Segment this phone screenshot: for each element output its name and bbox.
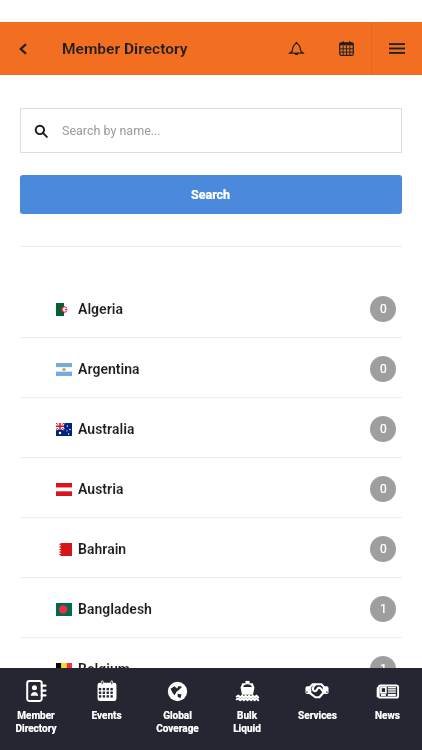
button[interactable]: Calendar <box>321 22 372 75</box>
button[interactable]: Events <box>71 668 142 750</box>
button[interactable]: Austria <box>0 461 422 517</box>
button[interactable]: News <box>352 668 422 750</box>
button[interactable]: Bahrain <box>0 521 422 577</box>
staticText: Services <box>298 710 337 722</box>
staticText: Bahrain <box>78 541 127 557</box>
staticText: Search by name... <box>62 123 161 138</box>
button[interactable]: Notifications <box>271 22 321 75</box>
staticText: Global Coverage <box>156 710 199 734</box>
staticText: Member Directory <box>62 40 188 58</box>
staticText: 1 <box>380 662 387 676</box>
button[interactable]: Search <box>20 175 402 214</box>
button[interactable]: Argentina <box>0 341 422 397</box>
staticText: Argentina <box>78 361 140 377</box>
button[interactable]: Search by name... <box>20 108 402 153</box>
button[interactable]: Global Coverage <box>142 668 212 750</box>
staticText: News <box>375 710 400 722</box>
button[interactable]: Services <box>282 668 352 750</box>
staticText: 0 <box>380 302 387 316</box>
staticText: 0 <box>380 482 387 496</box>
button[interactable]: Belgium <box>0 641 422 697</box>
staticText: Australia <box>78 421 135 437</box>
button[interactable]: Algeria <box>0 281 422 337</box>
staticText: Search <box>191 187 231 202</box>
staticText: 1 <box>380 602 387 616</box>
staticText: Bulk Liquid <box>233 710 261 734</box>
button[interactable]: Member Directory <box>0 668 71 750</box>
button[interactable]: Australia <box>0 401 422 457</box>
staticText: Algeria <box>78 301 123 317</box>
staticText: 0 <box>380 362 387 376</box>
staticText: Belgium <box>78 661 130 677</box>
button[interactable]: Bulk Liquid <box>212 668 282 750</box>
staticText: 0 <box>380 542 387 556</box>
button[interactable]: Back <box>0 22 46 75</box>
staticText: Bangladesh <box>78 601 152 617</box>
button[interactable]: Menu <box>372 22 422 75</box>
staticText: Member Directory <box>15 710 57 734</box>
staticText: 0 <box>380 422 387 436</box>
button[interactable]: Bangladesh <box>0 581 422 637</box>
staticText: Events <box>91 710 122 722</box>
staticText: Austria <box>78 481 124 497</box>
